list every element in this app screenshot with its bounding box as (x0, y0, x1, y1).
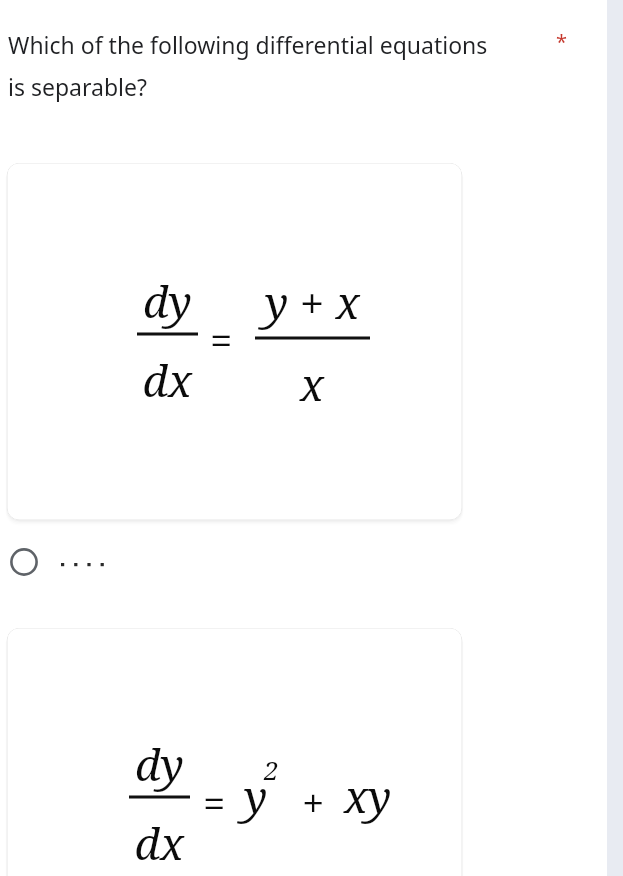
button[interactable] (7, 628, 462, 876)
button[interactable] (0, 18, 600, 104)
button[interactable]: Select option 1 (0, 538, 180, 586)
button[interactable] (7, 163, 462, 520)
